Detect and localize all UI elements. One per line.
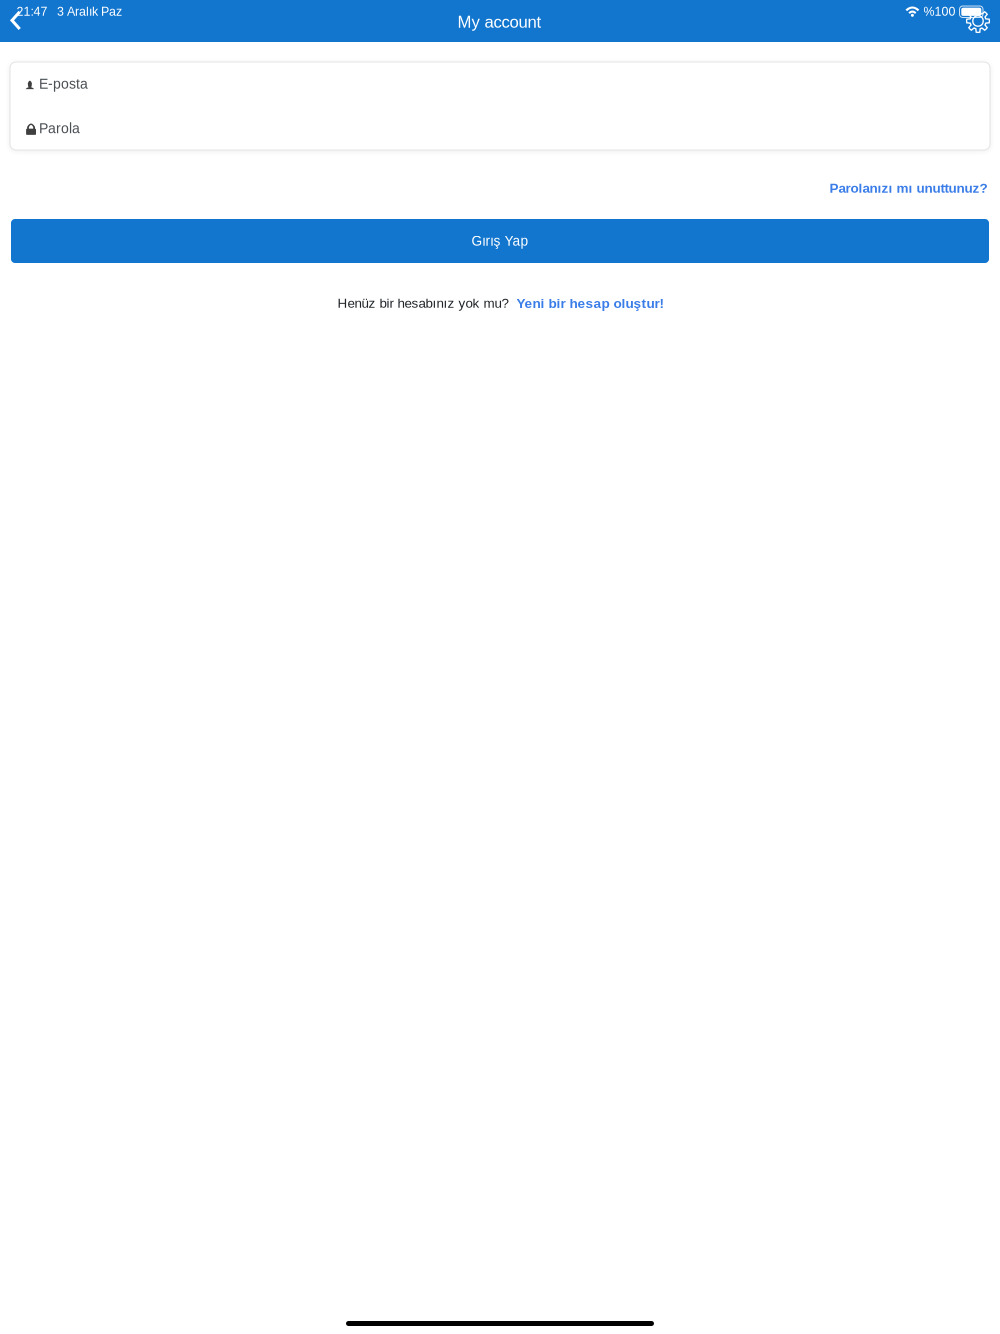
staticText: Parolanızı mı unuttunuz?: [829, 181, 987, 196]
button[interactable]: Giriş Yap: [11, 219, 989, 263]
staticText: %100: [923, 5, 955, 18]
button[interactable]: Settings: [956, 0, 1000, 42]
staticText: Henüz bir hesabınız yok mu?: [337, 296, 508, 311]
staticText: Yeni bir hesap oluştur!: [516, 296, 664, 311]
button[interactable]: Parola: [10, 106, 990, 150]
button[interactable]: Yeni bir hesap oluştur!: [516, 296, 664, 311]
staticText: My account: [457, 13, 541, 31]
button[interactable]: E-posta: [10, 62, 990, 106]
staticText: Parola: [39, 121, 80, 136]
staticText: 21:47: [16, 5, 47, 18]
staticText: 3 Aralık Paz: [57, 5, 122, 18]
button[interactable]: Back: [0, 0, 44, 42]
staticText: Giriş Yap: [471, 233, 528, 249]
button[interactable]: Parolanızı mı unuttunuz?: [829, 181, 987, 196]
staticText: E-posta: [39, 76, 88, 92]
